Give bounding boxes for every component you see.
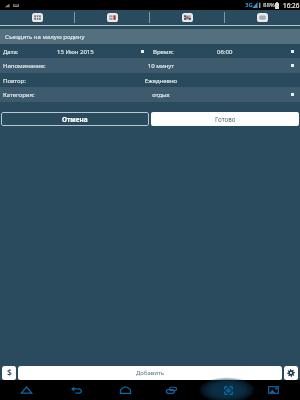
button[interactable]: Календарь неделя bbox=[75, 10, 150, 24]
staticText: 16:26 bbox=[283, 1, 300, 10]
button[interactable]: Вверх bbox=[10, 380, 42, 400]
button[interactable]: Календарь месяц bbox=[0, 10, 75, 24]
staticText: 88% bbox=[263, 1, 275, 9]
staticText: 3G bbox=[245, 1, 253, 9]
button[interactable]: Недавние приложения bbox=[155, 380, 187, 400]
button[interactable]: Заметки bbox=[225, 10, 300, 24]
button[interactable]: Снимок экрана bbox=[257, 380, 289, 400]
staticText: 10 минут bbox=[136, 62, 186, 70]
staticText: Напоминание: bbox=[3, 62, 46, 70]
staticText: $ bbox=[7, 367, 12, 379]
staticText: Повтор: bbox=[3, 77, 26, 85]
button[interactable]: Домой bbox=[109, 380, 141, 400]
button[interactable]: Добавить bbox=[18, 366, 282, 380]
button[interactable]: Отмена bbox=[1, 112, 149, 126]
staticText: Готово bbox=[215, 115, 236, 124]
button[interactable]: Повтор: bbox=[0, 73, 300, 88]
button[interactable]: Готово bbox=[151, 112, 299, 126]
staticText: Время: bbox=[153, 48, 174, 56]
button[interactable]: Назад bbox=[60, 380, 92, 400]
staticText: Категория: bbox=[3, 91, 35, 99]
button[interactable]: Выбрать время bbox=[150, 44, 300, 59]
staticText: отдых bbox=[136, 91, 186, 99]
staticText: Съездить на малую родину bbox=[5, 33, 85, 41]
staticText: Ежедневно bbox=[136, 77, 186, 85]
staticText: 15 Июн 2015 bbox=[57, 48, 94, 56]
button[interactable]: Настройки bbox=[284, 366, 298, 380]
staticText: Отмена bbox=[62, 115, 88, 124]
staticText: Дата: bbox=[3, 48, 19, 56]
button[interactable]: Масштаб bbox=[212, 380, 244, 400]
button[interactable]: Категория: bbox=[0, 87, 300, 102]
button[interactable]: Напоминание: bbox=[0, 58, 300, 73]
button[interactable]: Валюта bbox=[2, 366, 16, 380]
staticText: Добавить bbox=[136, 369, 165, 377]
button[interactable]: Выбрать дату bbox=[0, 44, 150, 59]
staticText: 06:00 bbox=[217, 48, 233, 56]
button[interactable]: События bbox=[150, 10, 225, 24]
button[interactable]: Съездить на малую родину bbox=[0, 29, 300, 44]
